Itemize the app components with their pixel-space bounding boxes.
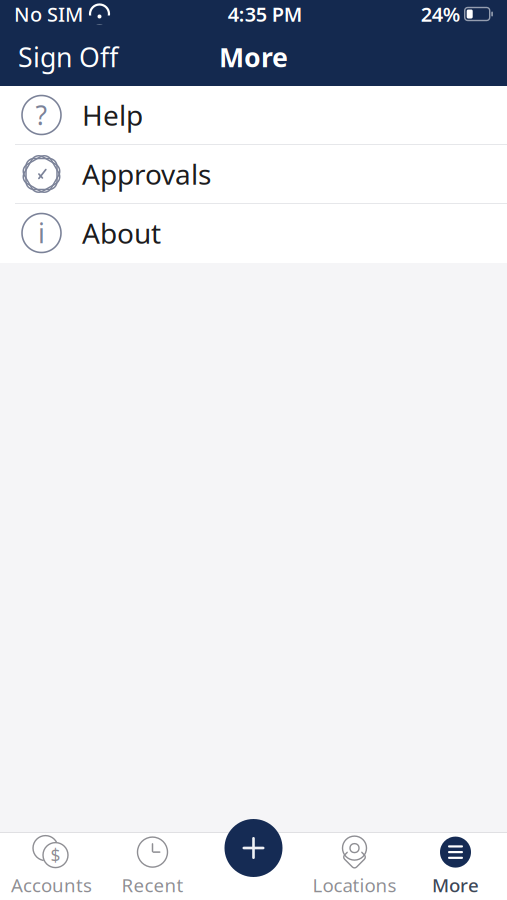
- staticText: 4:35 PM: [228, 1, 303, 27]
- staticText: Accounts: [11, 873, 92, 897]
- staticText: No SIM: [14, 1, 83, 27]
- button[interactable]: Add: [224, 819, 282, 877]
- staticText: i: [38, 215, 45, 251]
- staticText: More: [219, 39, 288, 75]
- button[interactable]: Locations: [304, 832, 405, 900]
- staticText: Locations: [312, 873, 396, 897]
- button[interactable]: More: [405, 832, 506, 900]
- staticText: ?: [35, 97, 47, 133]
- button[interactable]: ?: [0, 86, 507, 145]
- button[interactable]: Recent: [102, 832, 203, 900]
- button[interactable]: Approvals: [0, 145, 507, 204]
- staticText: About: [82, 214, 161, 252]
- button[interactable]: i: [0, 204, 507, 263]
- staticText: $: [50, 844, 60, 867]
- staticText: 24%: [421, 1, 461, 27]
- staticText: Recent: [121, 873, 183, 897]
- staticText: Sign Off: [18, 39, 118, 75]
- staticText: Approvals: [82, 155, 211, 193]
- staticText: Help: [82, 96, 143, 134]
- button[interactable]: $: [1, 832, 102, 900]
- staticText: More: [432, 873, 479, 897]
- button[interactable]: Sign Off: [0, 28, 136, 86]
